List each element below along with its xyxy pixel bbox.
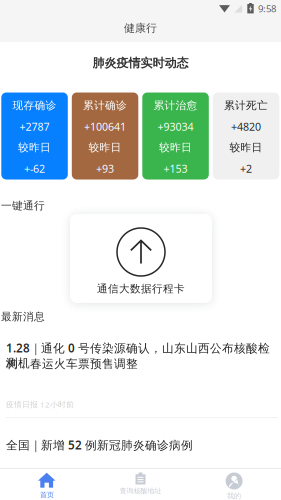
button[interactable]: 现存确诊 — [1, 92, 68, 179]
staticText: 查询核酸地址 — [119, 486, 161, 495]
staticText: 1.28｜通化 0 号传染源确认，山东山西公布核酸检测机 — [6, 340, 270, 371]
button[interactable]: 首页 — [0, 468, 94, 500]
staticText: +2 — [240, 161, 252, 176]
staticText: 构，春运火车票预售调整 — [6, 356, 138, 371]
button[interactable]: 全国｜新增 52 例新冠肺炎确诊病例 — [5, 433, 277, 453]
staticText: +93034 — [158, 119, 194, 134]
staticText: 肺炎疫情实时动态 — [92, 55, 188, 70]
staticText: 累计死亡 — [224, 99, 268, 112]
staticText: 疫情日报 12小时前 — [6, 399, 74, 410]
staticText: 最新消息 — [1, 310, 45, 323]
staticText: 9:58 — [258, 2, 276, 15]
staticText: 我的 — [227, 491, 241, 500]
button[interactable]: 查询核酸地址 — [94, 468, 187, 500]
staticText: 累计确诊 — [83, 99, 127, 112]
staticText: 较昨日 — [18, 141, 51, 154]
staticText: 全国｜新增 52 例新冠肺炎确诊病例 — [6, 437, 193, 453]
staticText: 通信大数据行程卡 — [97, 282, 185, 295]
button[interactable]: 累计确诊 — [72, 92, 138, 179]
staticText: 首页 — [40, 490, 54, 499]
staticText: 累计治愈 — [154, 99, 198, 112]
staticText: +-62 — [24, 161, 45, 176]
button[interactable]: 累计死亡 — [213, 92, 279, 179]
staticText: 健康行 — [124, 21, 157, 35]
staticText: 较昨日 — [88, 141, 121, 154]
staticText: 一键通行 — [1, 199, 45, 212]
staticText: +93 — [96, 161, 114, 176]
staticText: +2787 — [20, 119, 50, 134]
staticText: 现存确诊 — [13, 99, 57, 112]
staticText: +153 — [164, 161, 188, 176]
button[interactable]: 累计治愈 — [142, 92, 209, 179]
staticText: 较昨日 — [159, 141, 192, 154]
button[interactable]: 我的 — [187, 468, 281, 500]
staticText: +4820 — [231, 119, 261, 134]
staticText: 较昨日 — [230, 141, 263, 154]
button[interactable]: 1.28｜通化 0 号传染源确认，山东山西公布核酸检测机 — [5, 337, 277, 419]
button[interactable]: 通信大数据行程卡 — [70, 214, 212, 303]
staticText: +100641 — [84, 119, 126, 134]
